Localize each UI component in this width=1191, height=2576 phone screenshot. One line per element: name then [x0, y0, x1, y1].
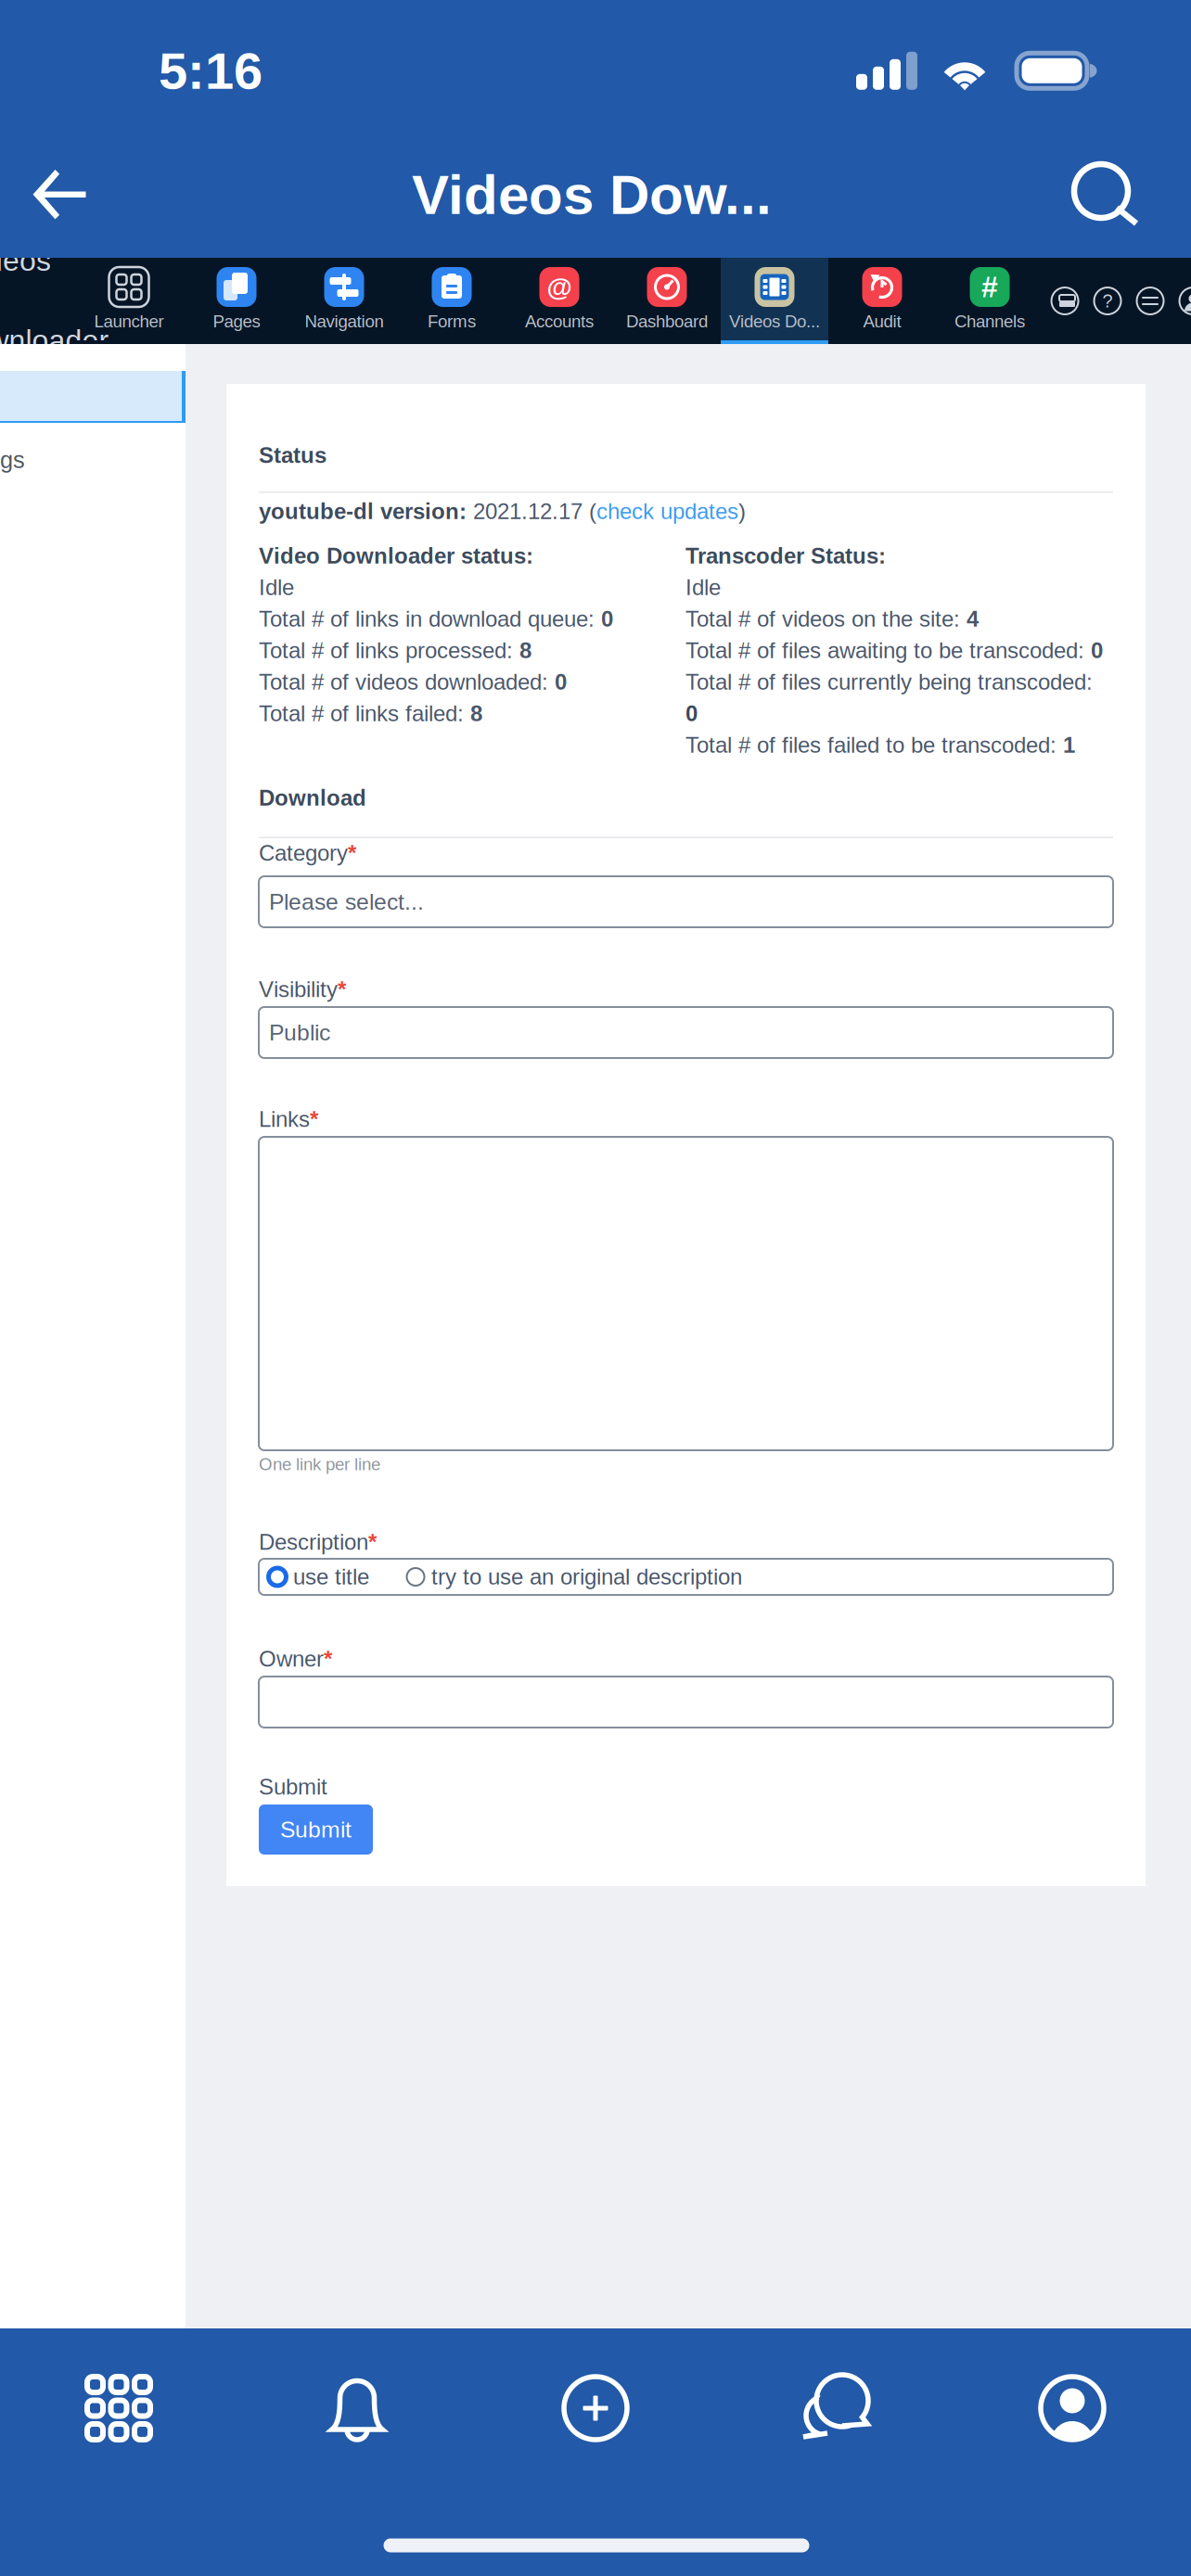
- staticText: use title: [293, 1564, 369, 1589]
- staticText: Submit: [259, 1774, 327, 1799]
- button[interactable]: @: [506, 258, 613, 344]
- staticText: Forms: [428, 312, 476, 331]
- staticText: Idle: [259, 575, 294, 600]
- staticText: deos: [0, 244, 51, 277]
- staticText: Total # of files currently being transco…: [685, 670, 1093, 694]
- staticText: ?: [1102, 291, 1113, 311]
- staticText: Navigation: [305, 312, 384, 331]
- button[interactable]: Help: [1086, 280, 1129, 322]
- button[interactable]: Audit: [828, 258, 936, 344]
- staticText: *: [348, 841, 356, 866]
- staticText: Accounts: [525, 312, 594, 331]
- staticText: Launcher: [94, 312, 164, 331]
- staticText: Submit: [280, 1817, 352, 1842]
- button[interactable]: Public: [259, 1007, 1113, 1058]
- staticText: Total # of videos downloaded: 0: [259, 670, 567, 694]
- staticText: Total # of links processed: 8: [259, 638, 531, 663]
- button[interactable]: Browser: [1044, 280, 1086, 322]
- button[interactable]: Apps: [0, 2328, 238, 2488]
- staticText: Pages: [213, 312, 260, 331]
- button[interactable]: Create: [476, 2328, 715, 2488]
- staticText: *: [368, 1530, 377, 1555]
- staticText: @: [547, 273, 572, 302]
- staticText: youtube-dl version:: [259, 499, 473, 524]
- button[interactable]: check updates: [596, 499, 738, 524]
- button[interactable]: Dashboard: [613, 258, 721, 344]
- staticText: 0: [685, 701, 698, 726]
- button[interactable]: Profile: [953, 2328, 1191, 2488]
- staticText: Visibility: [259, 977, 338, 1002]
- staticText: *: [338, 977, 346, 1002]
- staticText: Total # of links failed: 8: [259, 701, 482, 726]
- staticText: Download: [259, 786, 366, 810]
- staticText: 2021.12.17 (: [473, 499, 596, 524]
- button[interactable]: gs: [0, 423, 186, 473]
- button[interactable]: Search: [1046, 121, 1165, 269]
- staticText: gs: [0, 447, 25, 473]
- staticText: try to use an original description: [431, 1564, 742, 1589]
- button[interactable]: [0, 371, 186, 423]
- staticText: Total # of links in download queue: 0: [259, 607, 613, 631]
- staticText: Status: [259, 443, 327, 468]
- staticText: Idle: [685, 575, 721, 600]
- staticText: Transcoder Status:: [685, 543, 886, 568]
- button[interactable]: Back: [0, 121, 119, 269]
- staticText: Total # of videos on the site: 4: [685, 607, 979, 631]
- staticText: Video Downloader status:: [259, 543, 533, 568]
- staticText: Category: [259, 841, 348, 866]
- button[interactable]: #: [936, 258, 1044, 344]
- staticText: #: [981, 270, 998, 304]
- button[interactable]: Launcher: [75, 258, 183, 344]
- button[interactable]: Forms: [398, 258, 506, 344]
- button[interactable]: Pages: [183, 258, 290, 344]
- button[interactable]: Messages: [715, 2328, 953, 2488]
- button[interactable]: Account: [1172, 280, 1191, 322]
- staticText: 5:16: [159, 42, 263, 100]
- staticText: Public: [269, 1020, 330, 1045]
- staticText: Videos Dow...: [412, 164, 772, 226]
- staticText: Dashboard: [626, 312, 708, 331]
- button[interactable]: Videos Do...: [721, 258, 828, 344]
- button[interactable]: Notifications: [238, 2328, 476, 2488]
- staticText: Owner: [259, 1646, 324, 1671]
- button[interactable]: try to use an original description: [406, 1564, 742, 1589]
- staticText: *: [310, 1107, 318, 1132]
- button[interactable]: Please select...: [259, 876, 1113, 927]
- staticText: Videos Do...: [729, 312, 820, 331]
- button[interactable]: Preferences: [1129, 280, 1172, 322]
- staticText: *: [324, 1646, 332, 1671]
- button[interactable]: Navigation: [290, 258, 398, 344]
- staticText: Channels: [954, 312, 1025, 331]
- button[interactable]: Submit: [259, 1804, 373, 1855]
- staticText: check updates: [596, 499, 738, 524]
- staticText: Audit: [863, 312, 901, 331]
- staticText: Links: [259, 1107, 310, 1132]
- staticText: Total # of files awaiting to be transcod…: [685, 638, 1103, 663]
- staticText: Please select...: [269, 889, 424, 915]
- staticText: Total # of files failed to be transcoded…: [685, 733, 1075, 757]
- staticText: ): [738, 499, 746, 524]
- staticText: One link per line: [259, 1455, 380, 1474]
- button[interactable]: use title: [268, 1564, 369, 1589]
- staticText: wnloader: [0, 324, 109, 357]
- staticText: Description: [259, 1530, 368, 1555]
